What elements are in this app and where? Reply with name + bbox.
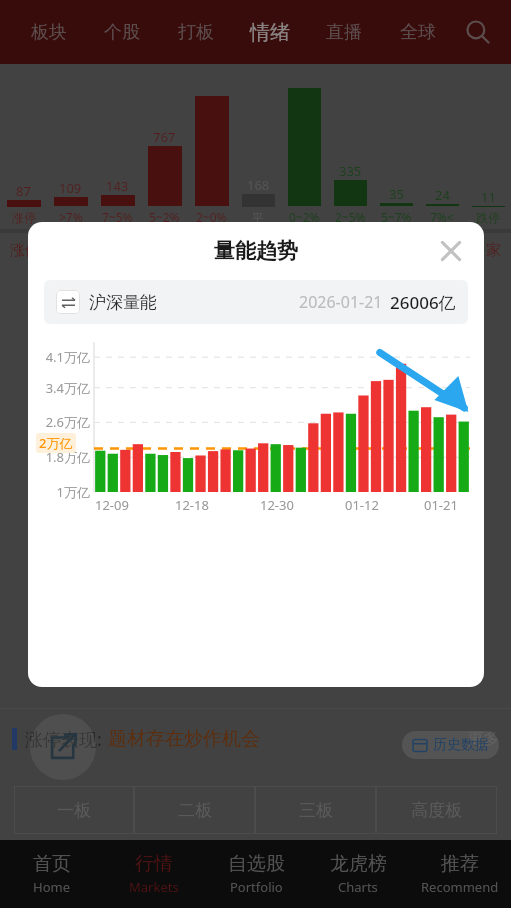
staticText: 11	[481, 188, 496, 206]
staticText: 1.8万亿	[30, 448, 90, 466]
staticText: 个股	[104, 21, 140, 44]
staticText: 2~0%	[196, 209, 227, 225]
staticText: Home	[33, 878, 70, 896]
staticText: 24	[435, 186, 450, 204]
button[interactable]: Search	[455, 0, 501, 64]
staticText: 109	[59, 179, 82, 197]
staticText: 直播	[326, 21, 362, 44]
staticText: 历史数据	[433, 736, 489, 754]
staticText: 12-18	[175, 496, 209, 514]
staticText: 情绪	[250, 20, 290, 45]
staticText: 量能趋势	[214, 238, 298, 264]
staticText: Portfolio	[230, 878, 283, 896]
staticText: 涨停表现:	[25, 727, 102, 752]
button[interactable]: Close	[432, 232, 470, 270]
staticText: 143	[106, 177, 129, 195]
staticText: 跌停	[476, 210, 500, 225]
button[interactable]: 涨停表现:	[12, 708, 499, 770]
staticText: 4.1万亿	[30, 348, 90, 366]
staticText: 三板	[299, 800, 333, 821]
staticText: 35	[389, 185, 404, 203]
staticText: 1万亿	[30, 483, 90, 501]
staticText: 沪深量能	[89, 292, 157, 313]
button[interactable]: 打板	[159, 0, 233, 64]
staticText: Markets	[129, 878, 179, 896]
button[interactable]: 二板	[134, 786, 255, 834]
staticText: 首页	[33, 852, 71, 876]
staticText: 板块	[31, 21, 67, 44]
staticText: 2026-01-21	[299, 291, 383, 313]
staticText: 3.4万亿	[30, 379, 90, 397]
staticText: 7%<	[430, 209, 454, 225]
staticText: 行情	[135, 852, 173, 876]
button[interactable]: 三板	[255, 786, 376, 834]
staticText: 0~2%	[289, 209, 320, 225]
button[interactable]: 情绪	[233, 0, 307, 64]
staticText: 涨停	[10, 241, 40, 260]
button[interactable]: 沪深量能	[44, 280, 468, 324]
staticText: 12-09	[95, 496, 129, 514]
staticText: 龙虎榜	[330, 852, 387, 876]
staticText: Charts	[338, 878, 378, 896]
staticText: 5~2%	[149, 209, 180, 225]
staticText: 题材存在炒作机会	[108, 727, 260, 751]
staticText: 自选股	[228, 852, 285, 876]
button[interactable]: 一板	[14, 786, 134, 834]
staticText: 2万亿	[39, 434, 73, 452]
button[interactable]: 推荐	[409, 840, 511, 908]
staticText: 打板	[178, 21, 214, 44]
staticText: 推荐	[441, 852, 479, 876]
staticText: 7~5%	[102, 209, 133, 225]
button[interactable]: 板块	[12, 0, 85, 64]
staticText: 二板	[178, 800, 212, 821]
staticText: 2~5%	[335, 209, 366, 225]
staticText: 一板	[57, 800, 91, 821]
staticText: 5~7%	[381, 209, 412, 225]
staticText: 涨停	[12, 210, 36, 225]
staticText: 87	[16, 182, 31, 200]
staticText: 全球	[400, 21, 436, 44]
button[interactable]: 直播	[307, 0, 381, 64]
staticText: 01-12	[345, 496, 379, 514]
button[interactable]: 首页	[0, 840, 103, 908]
staticText: 767	[153, 128, 176, 146]
button[interactable]: 历史数据	[412, 736, 489, 754]
staticText: 01-21	[424, 496, 458, 514]
staticText: >7%	[59, 209, 83, 225]
staticText: 高度板	[411, 800, 462, 821]
staticText: 168	[247, 176, 270, 194]
staticText: 更多	[467, 729, 499, 749]
button[interactable]: 高度板	[376, 786, 497, 834]
button[interactable]: 全球	[381, 0, 455, 64]
button[interactable]: 自选股	[205, 840, 307, 908]
staticText: 2.6万亿	[30, 413, 90, 431]
staticText: 12-30	[260, 496, 294, 514]
staticText: 335	[339, 162, 362, 180]
button[interactable]: 龙虎榜	[307, 840, 409, 908]
staticText: 26006亿	[390, 291, 456, 314]
staticText: 平	[252, 210, 264, 225]
button[interactable]: 行情	[103, 840, 205, 908]
button[interactable]: 个股	[85, 0, 159, 64]
button[interactable]: Share	[30, 714, 96, 780]
staticText: Recommend	[421, 878, 499, 896]
staticText: 家	[486, 241, 501, 260]
